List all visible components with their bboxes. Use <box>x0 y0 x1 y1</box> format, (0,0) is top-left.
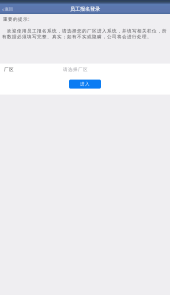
staticText: ‹ <box>2 5 4 13</box>
staticText: 请选择厂区 <box>63 67 88 72</box>
button[interactable]: 进入 <box>69 80 101 89</box>
button[interactable]: ‹ <box>0 4 16 14</box>
button[interactable]: 厂区 <box>0 64 170 76</box>
staticText: 进入 <box>80 81 90 87</box>
staticText: 欢迎使用员工报名系统，请选择您的厂区进入系统，并填写相关栏位，所有数据必须填写完… <box>2 28 167 40</box>
staticText: 厂区 <box>4 67 14 72</box>
staticText: 返回 <box>4 6 12 12</box>
staticText: 重要的提示: <box>3 16 29 22</box>
staticText: 员工报名登录 <box>70 6 100 12</box>
